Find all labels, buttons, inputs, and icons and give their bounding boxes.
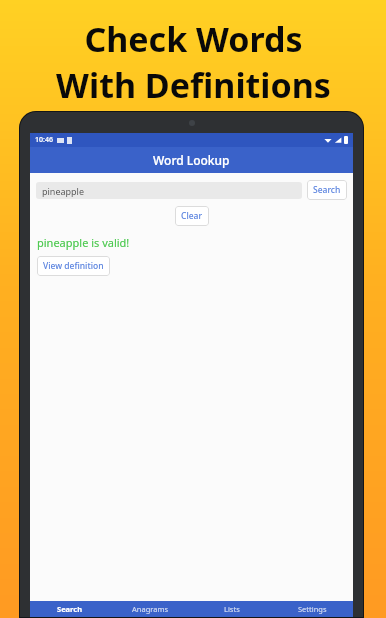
staticText: 10:46 <box>35 135 53 145</box>
staticText: With Definitions <box>56 62 331 108</box>
staticText: Check Words <box>84 16 303 62</box>
staticText: Search <box>313 184 341 196</box>
staticText: View definition <box>43 260 104 272</box>
button[interactable]: Anagrams <box>110 601 191 617</box>
button[interactable]: Lists <box>191 601 272 617</box>
staticText: Lists <box>224 604 240 614</box>
button[interactable]: Search <box>30 601 110 617</box>
button[interactable]: Clear <box>175 206 209 226</box>
button[interactable]: Settings <box>272 601 353 617</box>
button[interactable]: View definition <box>37 256 110 276</box>
staticText: pineapple <box>42 185 85 197</box>
staticText: Settings <box>298 604 327 614</box>
other: Battery <box>344 136 348 144</box>
button[interactable]: pineapple <box>36 182 302 199</box>
staticText: Anagrams <box>132 604 169 614</box>
staticText: Search <box>57 604 83 614</box>
button[interactable]: Search <box>307 180 347 200</box>
other: Signal <box>334 136 342 144</box>
staticText: Word Lookup <box>153 152 230 168</box>
staticText: pineapple is valid! <box>37 235 130 250</box>
staticText: Clear <box>181 210 203 222</box>
other: Wi-Fi <box>324 136 332 144</box>
